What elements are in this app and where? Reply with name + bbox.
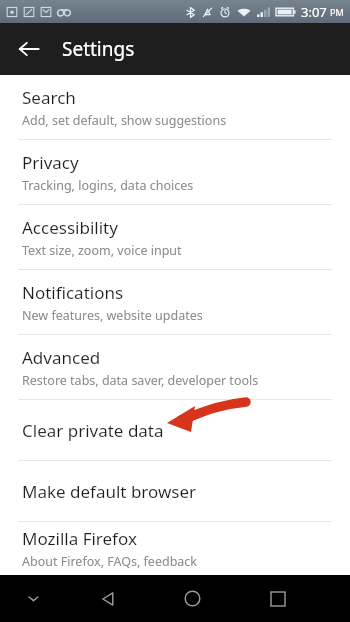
button[interactable]: Recent apps: [235, 575, 320, 622]
staticText: Mozilla Firefox: [22, 527, 137, 550]
button[interactable]: Privacy: [0, 140, 350, 204]
staticText: Accessibility: [22, 216, 118, 239]
staticText: 3:07: [301, 3, 327, 21]
button[interactable]: Search: [0, 75, 350, 139]
staticText: Tracking, logins, data choices: [22, 177, 194, 194]
staticText: About Firefox, FAQs, feedback: [22, 553, 198, 570]
staticText: Clear private data: [22, 419, 164, 442]
staticText: Privacy: [22, 151, 79, 174]
staticText: Make default browser: [22, 480, 197, 503]
button[interactable]: Home: [150, 575, 235, 622]
staticText: Settings: [62, 36, 135, 62]
button[interactable]: Accessibility: [0, 205, 350, 269]
button[interactable]: Notifications: [0, 270, 350, 334]
button[interactable]: Make default browser: [0, 461, 350, 521]
button[interactable]: Advanced: [0, 335, 350, 399]
button[interactable]: Back: [66, 575, 150, 622]
staticText: Search: [22, 86, 76, 109]
button[interactable]: Clear private data: [0, 400, 350, 460]
staticText: New features, website updates: [22, 307, 203, 324]
button[interactable]: Back: [8, 28, 50, 70]
staticText: Text size, zoom, voice input: [22, 242, 182, 259]
button[interactable]: Mozilla Firefox: [0, 522, 350, 575]
staticText: Advanced: [22, 346, 101, 369]
staticText: Restore tabs, data saver, developer tool…: [22, 372, 259, 389]
staticText: Add, set default, show suggestions: [22, 112, 227, 129]
staticText: PM: [330, 6, 344, 18]
button[interactable]: Hide keyboard: [0, 575, 66, 622]
staticText: Notifications: [22, 281, 124, 304]
